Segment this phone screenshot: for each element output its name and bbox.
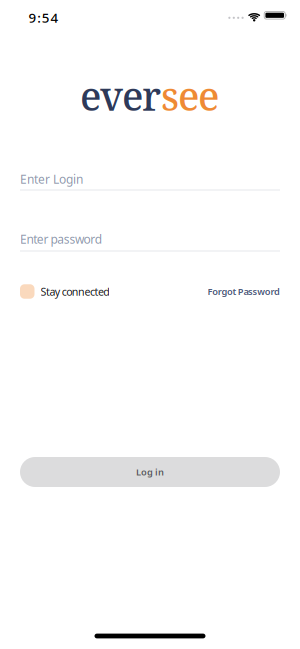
staticText: Enter password (20, 231, 102, 247)
staticText: ever (80, 69, 161, 122)
staticText: Stay connected (40, 284, 110, 299)
staticText: 9:54 (29, 9, 58, 26)
staticText: see (161, 69, 219, 122)
staticText: Enter Login (20, 171, 83, 187)
button[interactable]: Log in (20, 457, 280, 487)
button[interactable]: Forgot Password (208, 285, 280, 298)
textField[interactable]: Enter password (20, 229, 280, 249)
textField[interactable]: Enter Login (20, 169, 280, 189)
button[interactable]: Stay connected (20, 284, 110, 299)
staticText: Forgot Password (208, 285, 280, 298)
staticText: Log in (136, 466, 164, 478)
